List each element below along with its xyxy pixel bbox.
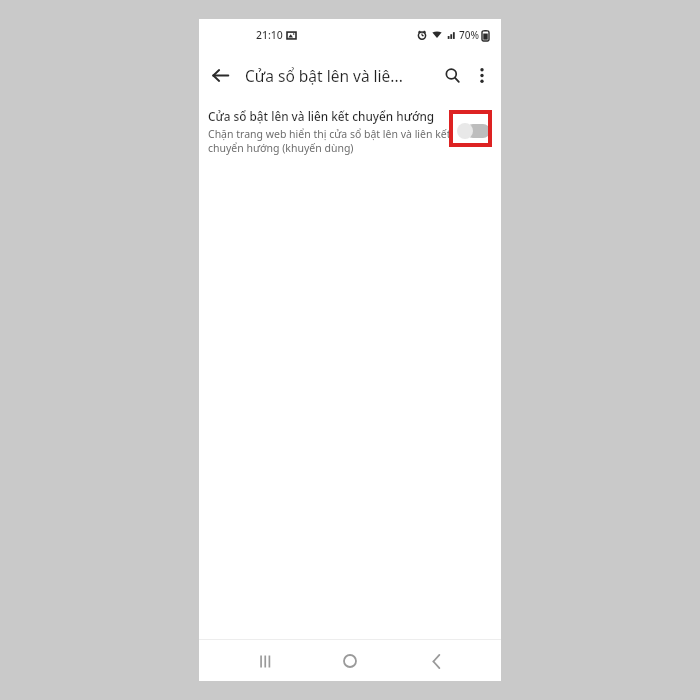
- staticText: Cửa sổ bật lên và liê...: [245, 65, 403, 86]
- staticText: Cửa sổ bật lên và liên kết chuyển hướng: [208, 108, 435, 124]
- button[interactable]: Back: [416, 641, 456, 681]
- button[interactable]: Back: [206, 61, 234, 89]
- staticText: 70%: [459, 28, 479, 42]
- button[interactable]: Cửa sổ bật lên và liên kết chuyển hướng: [199, 100, 501, 165]
- button[interactable]: More options: [469, 62, 495, 88]
- button[interactable]: Home: [330, 641, 370, 681]
- button[interactable]: Search: [438, 61, 466, 89]
- button[interactable]: Toggle popups and redirects: [457, 120, 491, 142]
- staticText: 21:10: [256, 28, 283, 42]
- staticText: Chặn trang web hiển thị cửa sổ bật lên v…: [208, 127, 451, 155]
- button[interactable]: Recent apps: [245, 641, 285, 681]
